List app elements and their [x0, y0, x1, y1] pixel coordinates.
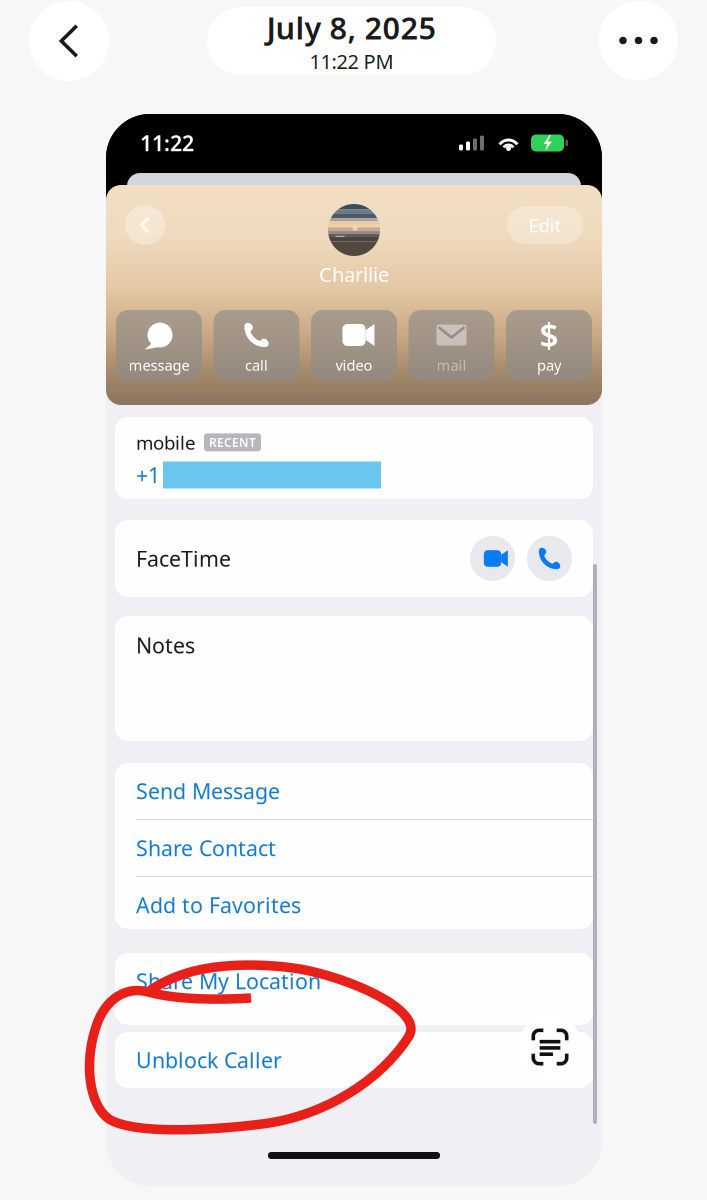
staticText: mobile [136, 430, 196, 455]
staticText: 11:22 [140, 129, 194, 157]
button[interactable]: Back [125, 205, 165, 245]
staticText: RECENT [209, 434, 256, 450]
button[interactable]: More options [599, 1, 678, 80]
staticText: Notes [136, 631, 195, 659]
button[interactable]: FaceTime audio [527, 536, 572, 581]
button[interactable]: call [213, 310, 299, 381]
staticText: Send Message [136, 777, 280, 805]
button[interactable]: Share Contact [115, 820, 593, 876]
button[interactable]: Share My Location [115, 953, 593, 1009]
staticText: Edit [528, 213, 561, 237]
button[interactable]: Add to Favorites [115, 877, 593, 933]
staticText: Unblock Caller [136, 1046, 282, 1074]
button[interactable]: message [116, 310, 202, 381]
staticText: video [335, 355, 372, 375]
button[interactable]: Edit [507, 206, 583, 244]
staticText: +1 [136, 461, 160, 489]
staticText: July 8, 2025 [266, 7, 436, 48]
staticText: mail [436, 355, 466, 375]
button[interactable]: Live Text [518, 1015, 582, 1079]
staticText: Share My Location [136, 967, 321, 995]
button[interactable]: Unblock Caller [115, 1032, 593, 1088]
staticText: pay [537, 355, 561, 375]
staticText: message [128, 355, 189, 375]
staticText: 11:22 PM [309, 48, 393, 75]
staticText: call [245, 355, 268, 375]
button[interactable]: Send Message [115, 763, 593, 819]
button[interactable]: $ [506, 310, 592, 381]
staticText: FaceTime [136, 544, 231, 573]
staticText: Charllie [319, 261, 389, 288]
button[interactable]: FaceTime video [470, 536, 515, 581]
staticText: Add to Favorites [136, 891, 301, 919]
button[interactable]: Back [29, 1, 109, 81]
button[interactable]: video [311, 310, 397, 381]
staticText: Share Contact [136, 834, 276, 862]
staticText: $ [539, 313, 558, 357]
button[interactable]: mail [408, 310, 494, 381]
